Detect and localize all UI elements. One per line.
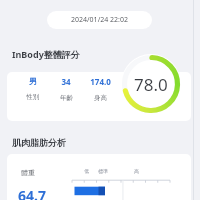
staticText: 體重 [21,168,35,177]
staticText: 年齡 [60,94,73,102]
staticText: 64.7 [18,186,46,200]
staticText: 男 [29,76,37,86]
staticText: 低 [84,168,89,174]
staticText: 2024/01/24 22:02 [71,15,128,25]
button[interactable]: 體重 [7,154,191,200]
staticText: InBody整體評分 [12,48,80,60]
staticText: 高 [134,168,139,174]
button[interactable]: 2024/01/24 22:02 [47,11,152,29]
staticText: 肌肉脂肪分析 [12,137,66,148]
staticText: 性別 [26,93,39,101]
button[interactable]: 男 [7,72,191,121]
staticText: 34 [61,76,71,87]
staticText: 174.0 [90,76,111,87]
staticText: 標準 [98,168,108,174]
staticText: 身高 [94,94,107,102]
staticText: 78.0 [134,73,168,96]
